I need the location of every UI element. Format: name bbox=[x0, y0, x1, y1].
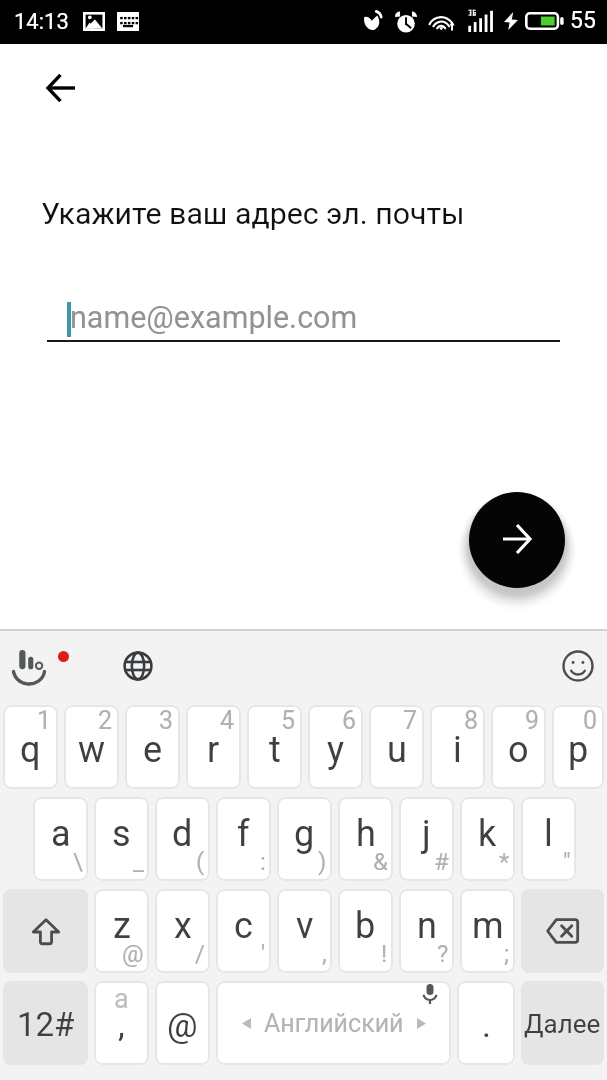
button[interactable]: Emoji bbox=[549, 637, 607, 695]
staticText: b bbox=[355, 905, 376, 947]
button[interactable]: b bbox=[338, 889, 393, 973]
staticText: q bbox=[20, 729, 41, 771]
staticText: * bbox=[499, 848, 510, 876]
button[interactable]: Shift bbox=[3, 889, 88, 973]
staticText: @ bbox=[167, 1005, 198, 1045]
staticText: l bbox=[544, 813, 553, 855]
staticText: y bbox=[327, 729, 345, 771]
staticText: а bbox=[114, 983, 129, 1015]
button[interactable]: h bbox=[338, 797, 393, 881]
staticText: g bbox=[294, 813, 315, 855]
button[interactable]: . bbox=[457, 981, 515, 1065]
staticText: j bbox=[422, 813, 431, 855]
button[interactable]: s bbox=[94, 797, 149, 881]
staticText: _ bbox=[133, 848, 144, 876]
button[interactable]: a bbox=[33, 797, 88, 881]
button[interactable]: p bbox=[552, 705, 604, 789]
button[interactable]: Далее bbox=[521, 981, 604, 1065]
button[interactable]: v bbox=[277, 889, 332, 973]
button[interactable]: t bbox=[247, 705, 302, 789]
button[interactable]: а bbox=[94, 981, 149, 1065]
staticText: \ bbox=[73, 848, 83, 876]
staticText: t bbox=[269, 729, 281, 771]
staticText: Английский bbox=[264, 1009, 404, 1038]
button[interactable]: c bbox=[216, 889, 271, 973]
staticText: " bbox=[563, 848, 571, 876]
staticText: 3 bbox=[159, 706, 174, 735]
staticText: name@example.com bbox=[70, 300, 358, 336]
staticText: n bbox=[417, 905, 437, 947]
staticText: ) bbox=[318, 848, 327, 876]
staticText: 6 bbox=[342, 706, 357, 735]
button[interactable]: 12# bbox=[3, 981, 88, 1065]
staticText: x bbox=[174, 905, 192, 947]
button[interactable]: i bbox=[430, 705, 485, 789]
button[interactable]: j bbox=[399, 797, 454, 881]
staticText: a bbox=[51, 813, 71, 855]
button[interactable]: z bbox=[94, 889, 149, 973]
staticText: u bbox=[387, 729, 407, 771]
staticText: : bbox=[260, 848, 266, 876]
staticText: ( bbox=[196, 848, 205, 876]
button[interactable]: o bbox=[491, 705, 546, 789]
staticText: ' bbox=[261, 940, 266, 968]
button[interactable]: r bbox=[186, 705, 241, 789]
staticText: 9 bbox=[525, 706, 540, 735]
button[interactable]: n bbox=[399, 889, 454, 973]
staticText: z bbox=[113, 905, 131, 947]
staticText: & bbox=[373, 848, 388, 876]
staticText: . bbox=[482, 1005, 491, 1045]
staticText: , bbox=[322, 940, 327, 968]
staticText: 7 bbox=[403, 706, 418, 735]
button[interactable]: Next bbox=[469, 492, 565, 588]
staticText: 8 bbox=[464, 706, 479, 735]
button[interactable]: d bbox=[155, 797, 210, 881]
staticText: 1 bbox=[37, 706, 52, 735]
button[interactable]: Back bbox=[35, 62, 87, 114]
staticText: 12# bbox=[17, 1005, 75, 1044]
button[interactable]: @ bbox=[155, 981, 210, 1065]
staticText: o bbox=[508, 729, 529, 771]
button[interactable]: u bbox=[369, 705, 424, 789]
staticText: k bbox=[478, 813, 497, 855]
staticText: r bbox=[207, 729, 220, 771]
staticText: i bbox=[453, 729, 462, 771]
button[interactable]: w bbox=[64, 705, 119, 789]
button[interactable]: y bbox=[308, 705, 363, 789]
staticText: 2 bbox=[98, 706, 113, 735]
staticText: f bbox=[237, 813, 250, 855]
button[interactable]: Change language bbox=[109, 637, 167, 695]
staticText: h bbox=[356, 813, 376, 855]
staticText: s bbox=[112, 813, 131, 855]
staticText: 5 bbox=[281, 706, 296, 735]
button[interactable]: e bbox=[125, 705, 180, 789]
button[interactable]: q bbox=[3, 705, 58, 789]
staticText: ? bbox=[437, 940, 449, 968]
staticText: m bbox=[472, 905, 504, 947]
staticText: ! bbox=[381, 940, 388, 968]
staticText: 14:13 bbox=[14, 9, 69, 35]
staticText: 0 bbox=[583, 706, 598, 735]
button[interactable]: g bbox=[277, 797, 332, 881]
staticText: , bbox=[118, 1005, 125, 1045]
staticText: 55 bbox=[570, 7, 596, 34]
button[interactable]: f bbox=[216, 797, 271, 881]
button[interactable]: Backspace bbox=[521, 889, 604, 973]
button[interactable]: l bbox=[521, 797, 576, 881]
staticText: e bbox=[143, 729, 163, 771]
staticText: Укажите ваш адрес эл. почты bbox=[41, 196, 465, 232]
staticText: @ bbox=[122, 940, 144, 968]
button[interactable]: k bbox=[460, 797, 515, 881]
button[interactable]: m bbox=[460, 889, 515, 973]
button[interactable]: x bbox=[155, 889, 210, 973]
button[interactable]: Space bbox=[216, 981, 451, 1065]
button[interactable]: Keyboard menu bbox=[0, 638, 57, 695]
staticText: d bbox=[172, 813, 193, 855]
staticText: w bbox=[78, 729, 106, 771]
staticText: c bbox=[234, 905, 253, 947]
staticText: v bbox=[296, 905, 314, 947]
staticText: p bbox=[568, 729, 589, 771]
staticText: # bbox=[434, 848, 449, 876]
staticText: ; bbox=[504, 940, 510, 968]
staticText: 4 bbox=[220, 706, 235, 735]
